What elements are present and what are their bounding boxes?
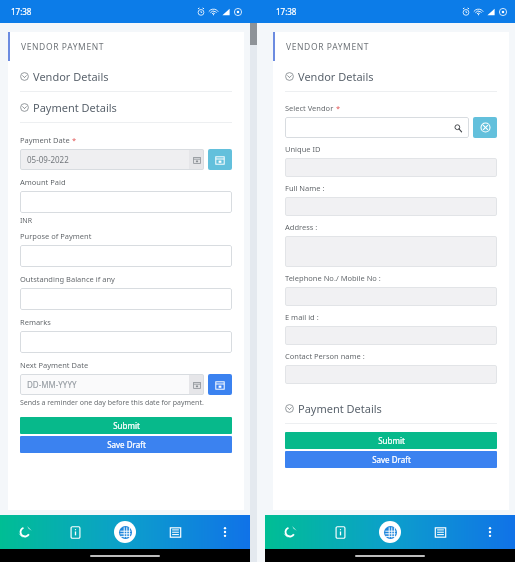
staticText: 17:38 [276, 6, 297, 17]
button[interactable]: Info [50, 515, 100, 549]
button[interactable] [285, 236, 497, 267]
button[interactable]: Save Draft [20, 436, 232, 453]
staticText: Payment Details [298, 401, 382, 416]
staticText: Telephone No./ Mobile No : [285, 273, 381, 283]
staticText: Purpose of Payment [20, 231, 92, 241]
button[interactable]: More [465, 515, 515, 549]
staticText: Submit [113, 420, 140, 431]
button[interactable]: Payment Details [8, 92, 244, 122]
staticText: Full Name : [285, 183, 325, 193]
button[interactable] [285, 287, 497, 306]
button[interactable]: List [150, 515, 200, 549]
button[interactable]: More [200, 515, 250, 549]
button[interactable] [285, 326, 497, 345]
staticText: Remarks [20, 317, 51, 327]
staticText: Unique ID [285, 144, 321, 154]
button[interactable]: DD-MM-YYYY [20, 374, 204, 395]
staticText: VENDOR PAYMENT [286, 41, 370, 53]
staticText: VENDOR PAYMENT [21, 41, 105, 53]
button[interactable]: Submit [20, 417, 232, 434]
button[interactable] [285, 117, 469, 138]
staticText: Sends a reminder one day before this dat… [20, 398, 204, 408]
staticText: Save Draft [372, 454, 411, 465]
button[interactable]: Pick date [189, 149, 204, 170]
button[interactable]: VENDOR PAYMENT [8, 32, 244, 61]
button[interactable]: Pick date [189, 374, 204, 395]
staticText: Submit [378, 435, 405, 446]
staticText: 05-09-2022 [27, 154, 189, 165]
button[interactable]: Clear vendor [473, 117, 497, 138]
staticText: Amount Paid [20, 177, 66, 187]
button[interactable]: Vendor Details [273, 61, 509, 91]
button[interactable]: Sync [265, 515, 315, 549]
staticText: Next Payment Date [20, 360, 89, 370]
staticText: Contact Person name : [285, 351, 365, 361]
staticText: * [334, 103, 341, 113]
staticText: Payment Details [33, 100, 117, 115]
button[interactable] [20, 288, 232, 310]
staticText: INR [20, 216, 33, 226]
staticText: Vendor Details [298, 69, 374, 84]
button[interactable] [285, 158, 497, 177]
staticText: 17:38 [11, 6, 32, 17]
button[interactable]: Apps [365, 515, 415, 549]
button[interactable]: Open calendar [208, 374, 232, 395]
button[interactable]: Save Draft [285, 451, 497, 468]
button[interactable]: Open calendar [208, 149, 232, 170]
button[interactable]: Submit [285, 432, 497, 449]
button[interactable]: Info [315, 515, 365, 549]
staticText: Address : [285, 222, 318, 232]
button[interactable]: Vendor Details [8, 61, 244, 91]
button[interactable] [285, 197, 497, 216]
button[interactable]: Sync [0, 515, 50, 549]
button[interactable] [20, 191, 232, 213]
button[interactable]: Apps [100, 515, 150, 549]
staticText: Outstanding Balance if any [20, 274, 115, 284]
staticText: Vendor Details [33, 69, 109, 84]
staticText: Payment Date [20, 135, 70, 145]
staticText: DD-MM-YYYY [27, 379, 189, 390]
button[interactable] [20, 331, 232, 353]
button[interactable] [285, 365, 497, 384]
button[interactable]: VENDOR PAYMENT [273, 32, 509, 61]
button[interactable]: 05-09-2022 [20, 149, 204, 170]
staticText: Select Vendor [285, 103, 334, 113]
button[interactable]: List [415, 515, 465, 549]
staticText: E mail id : [285, 312, 319, 322]
staticText: Save Draft [107, 439, 146, 450]
button[interactable] [20, 245, 232, 267]
button[interactable]: Payment Details [273, 393, 509, 423]
staticText: * [70, 135, 77, 145]
